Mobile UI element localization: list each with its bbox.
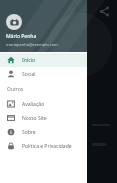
staticText: mariopenha@exemplo.com — [6, 42, 58, 47]
staticText: Mário Penha — [6, 33, 37, 40]
staticText: Avaliação — [22, 101, 45, 108]
button[interactable]: Política e Privacidade — [0, 139, 87, 153]
staticText: Início — [22, 57, 36, 64]
staticText: Nosso Site — [22, 115, 47, 122]
staticText: Social — [22, 71, 36, 78]
button[interactable]: Nosso Site — [0, 111, 87, 125]
button[interactable]: Sobre — [0, 125, 87, 139]
button[interactable]: Início — [0, 53, 87, 67]
button[interactable]: Social — [0, 67, 87, 81]
staticText: Outros — [7, 86, 24, 93]
button[interactable]: Avaliação — [0, 97, 87, 111]
staticText: Política e Privacidade — [22, 143, 72, 150]
staticText: Sobre — [22, 129, 36, 136]
